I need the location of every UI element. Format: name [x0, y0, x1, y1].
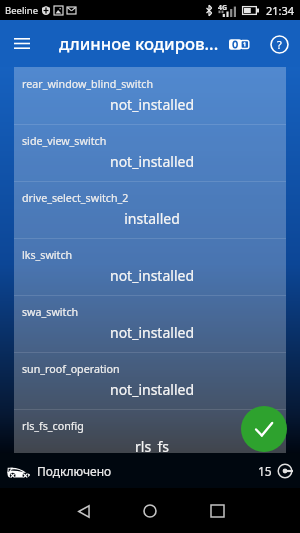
- staticText: installed: [18, 209, 286, 228]
- staticText: lks_switch: [22, 248, 73, 263]
- button[interactable]: Binary coding: [223, 28, 255, 60]
- staticText: 4G: [218, 3, 228, 13]
- staticText: Подключено: [37, 463, 112, 479]
- staticText: 21:34: [266, 3, 295, 18]
- button[interactable]: Home: [130, 491, 170, 531]
- button[interactable]: side_view_switch: [14, 124, 286, 181]
- button[interactable]: Open navigation menu: [7, 29, 37, 59]
- button[interactable]: rls_fs_config: [14, 409, 286, 453]
- staticText: длинное кодиров...: [59, 32, 231, 55]
- staticText: rls_fs_config: [22, 419, 84, 434]
- staticText: not_installed: [18, 152, 286, 171]
- staticText: sun_roof_operation: [22, 362, 120, 377]
- staticText: rls_fs: [18, 437, 286, 453]
- button[interactable]: rear_window_blind_switch: [14, 67, 286, 124]
- button[interactable]: Help: [263, 28, 295, 60]
- staticText: drive_select_switch_2: [22, 191, 129, 206]
- button[interactable]: Apply: [241, 406, 287, 452]
- staticText: Beeline: [5, 4, 39, 17]
- staticText: not_installed: [18, 380, 286, 399]
- staticText: swa_switch: [22, 305, 79, 320]
- staticText: ?: [277, 37, 282, 52]
- button[interactable]: sun_roof_operation: [14, 352, 286, 409]
- button[interactable]: Recent apps: [197, 491, 237, 531]
- staticText: not_installed: [18, 266, 286, 285]
- button[interactable]: Back: [64, 491, 104, 531]
- button[interactable]: swa_switch: [14, 295, 286, 352]
- staticText: 15: [258, 463, 272, 479]
- staticText: side_view_switch: [22, 134, 107, 149]
- button[interactable]: drive_select_switch_2: [14, 181, 286, 238]
- staticText: rear_window_blind_switch: [22, 77, 153, 92]
- staticText: not_installed: [18, 95, 286, 114]
- staticText: not_installed: [18, 323, 286, 342]
- button[interactable]: lks_switch: [14, 238, 286, 295]
